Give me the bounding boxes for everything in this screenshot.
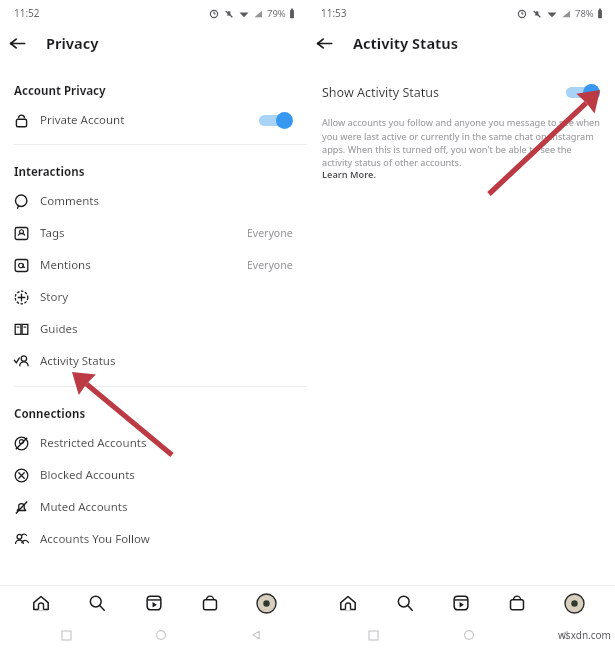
button[interactable]: Mentions (0, 249, 307, 281)
button[interactable]: Reels (446, 588, 476, 618)
button[interactable]: Story (0, 281, 307, 313)
staticText: Everyone (247, 258, 293, 272)
staticText: Comments (40, 193, 99, 209)
button[interactable]: Recents (55, 624, 77, 646)
button[interactable]: Show Activity Status (307, 76, 615, 108)
button[interactable]: Profile (251, 588, 281, 618)
button[interactable]: Restricted Accounts (0, 427, 307, 459)
button[interactable]: Blocked Accounts (0, 459, 307, 491)
staticText: 11:52 (14, 6, 40, 20)
staticText: 79% (267, 7, 286, 20)
button[interactable]: Toggle (259, 111, 293, 129)
button[interactable]: Back (307, 26, 341, 60)
button[interactable]: Private Account (0, 104, 307, 136)
staticText: Everyone (247, 226, 293, 240)
button[interactable]: Learn More. (322, 168, 376, 181)
staticText: Account Privacy (14, 83, 106, 99)
button[interactable]: Search (82, 588, 112, 618)
button[interactable]: Accounts You Follow (0, 523, 307, 555)
button[interactable]: Recents (362, 624, 384, 646)
button[interactable]: Shop (195, 588, 225, 618)
button[interactable]: Home (26, 588, 56, 618)
staticText: Restricted Accounts (40, 435, 147, 451)
staticText: Mentions (40, 257, 91, 273)
button[interactable]: Tags (0, 217, 307, 249)
button[interactable]: Home (458, 624, 480, 646)
staticText: Privacy (46, 33, 99, 53)
button[interactable]: Profile (559, 588, 589, 618)
staticText: 78% (575, 7, 594, 20)
button[interactable]: Muted Accounts (0, 491, 307, 523)
staticText: Tags (40, 225, 65, 241)
button[interactable]: Guides (0, 313, 307, 345)
staticText: Interactions (14, 164, 85, 180)
staticText: wsxdn.com (558, 628, 611, 642)
button[interactable]: Back (0, 26, 34, 60)
button[interactable]: Back (553, 624, 575, 646)
staticText: Muted Accounts (40, 499, 128, 515)
staticText: Activity Status (353, 33, 459, 53)
button[interactable]: Home (333, 588, 363, 618)
staticText: 11:53 (321, 6, 347, 20)
button[interactable]: Toggle (566, 83, 600, 101)
button[interactable]: Comments (0, 185, 307, 217)
button[interactable]: Search (390, 588, 420, 618)
staticText: Story (40, 289, 69, 305)
staticText: Guides (40, 321, 78, 337)
button[interactable]: Activity Status (0, 345, 307, 377)
button[interactable]: Reels (139, 588, 169, 618)
staticText: Connections (14, 406, 86, 422)
button[interactable]: Home (150, 624, 172, 646)
staticText: Blocked Accounts (40, 467, 135, 483)
staticText: Allow accounts you follow and anyone you… (322, 116, 600, 168)
staticText: Accounts You Follow (40, 531, 150, 547)
button[interactable]: Shop (502, 588, 532, 618)
button[interactable]: Back (245, 624, 267, 646)
staticText: Private Account (40, 112, 125, 128)
staticText: Show Activity Status (322, 84, 440, 101)
staticText: Activity Status (40, 353, 116, 369)
